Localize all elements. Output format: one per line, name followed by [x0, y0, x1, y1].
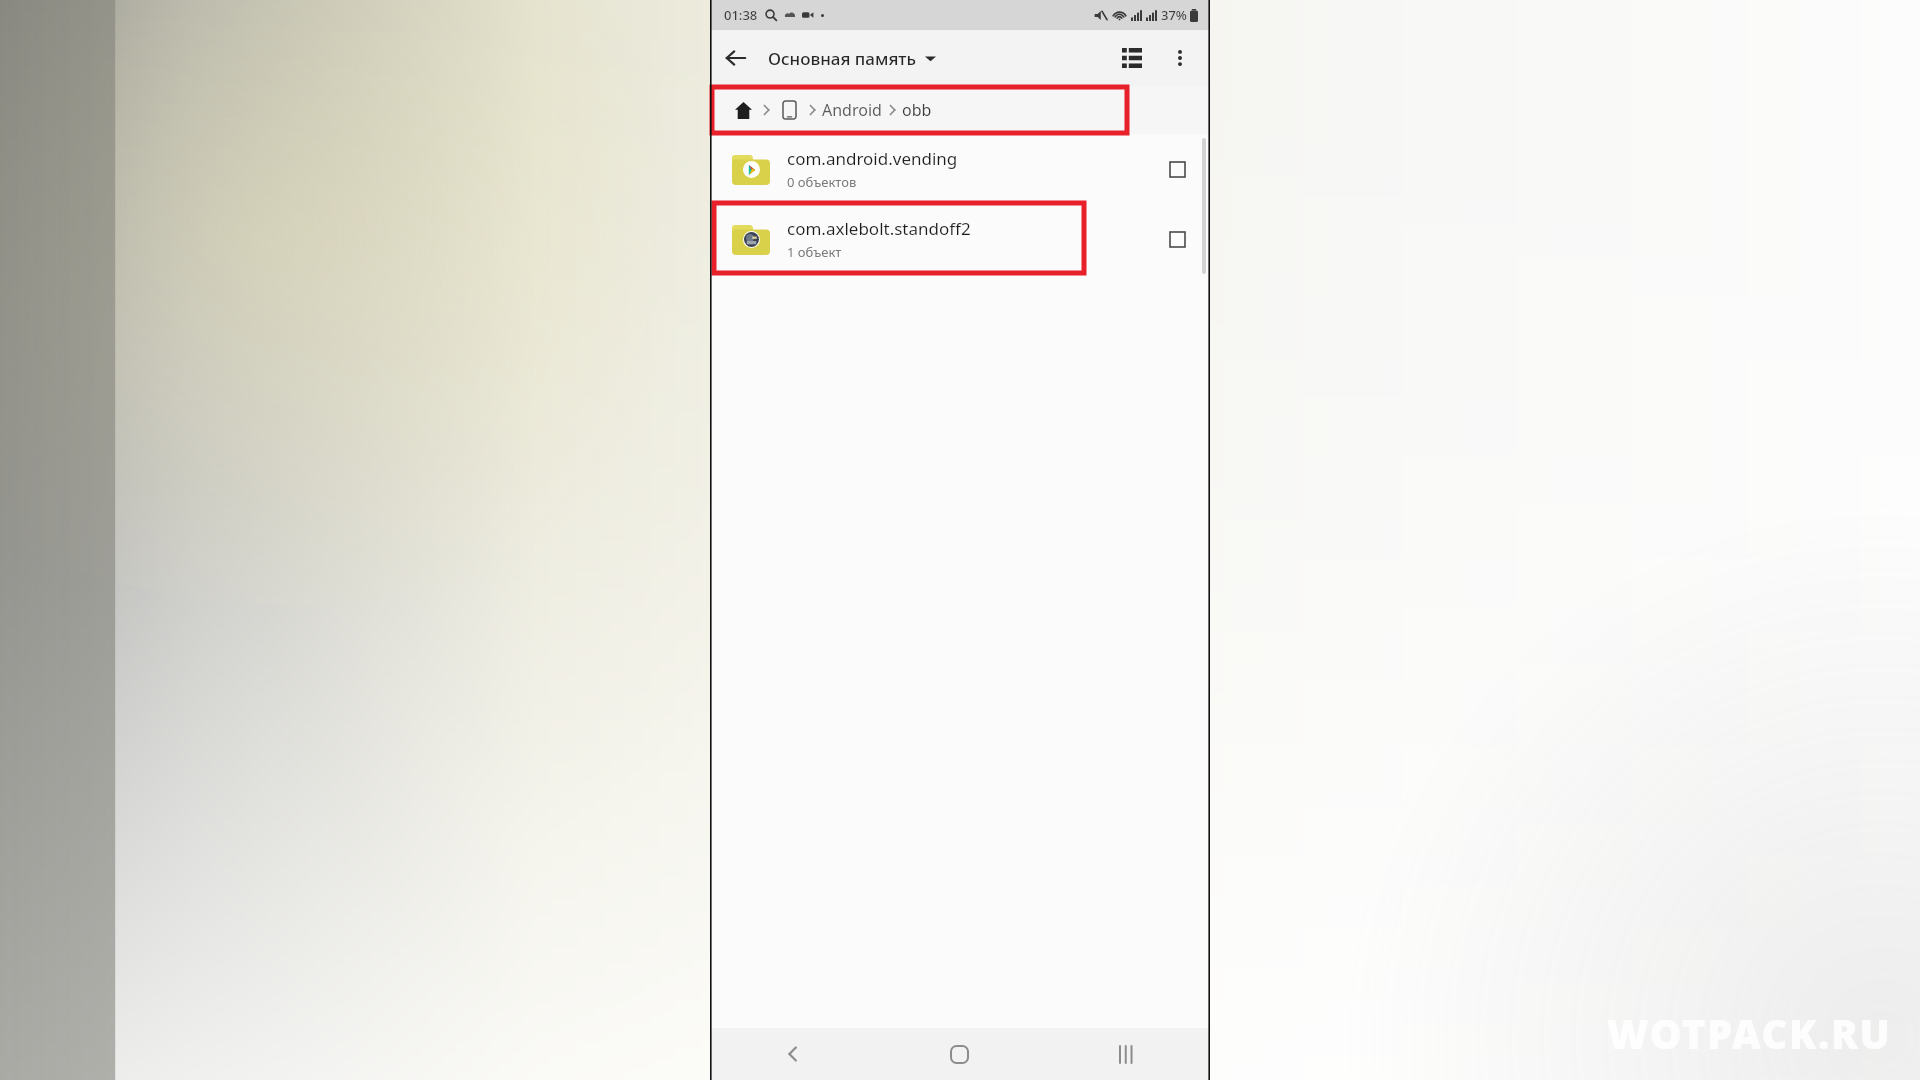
staticText: Android — [822, 99, 882, 121]
button[interactable]: com.axlebolt.standoff2 — [710, 204, 1210, 274]
button[interactable]: Home — [730, 97, 756, 123]
button[interactable]: More options — [1156, 34, 1204, 82]
button[interactable]: Back — [710, 1028, 876, 1080]
button[interactable]: Основная память — [768, 47, 936, 70]
staticText: 0 объектов — [787, 173, 857, 191]
staticText: 01:38 — [724, 6, 758, 24]
button[interactable]: Select com.axlebolt.standoff2 — [1160, 222, 1194, 256]
staticText: com.android.vending — [787, 147, 958, 170]
staticText: 1 объект — [787, 243, 842, 261]
staticText: com.axlebolt.standoff2 — [787, 217, 971, 240]
button[interactable]: Recent apps — [1043, 1028, 1210, 1080]
button[interactable]: View as list — [1108, 34, 1156, 82]
button[interactable]: Device storage — [776, 97, 802, 123]
staticText: Основная память — [768, 47, 916, 70]
button[interactable]: obb — [902, 99, 932, 121]
button[interactable]: Android — [822, 99, 882, 121]
button[interactable]: com.android.vending — [710, 134, 1210, 204]
staticText: obb — [902, 99, 932, 121]
staticText: WOTPACK.RU — [1607, 1006, 1892, 1060]
button[interactable]: Home — [876, 1028, 1043, 1080]
staticText: 37% — [1161, 6, 1187, 24]
button[interactable]: Back — [710, 32, 762, 84]
button[interactable]: Select com.android.vending — [1160, 152, 1194, 186]
